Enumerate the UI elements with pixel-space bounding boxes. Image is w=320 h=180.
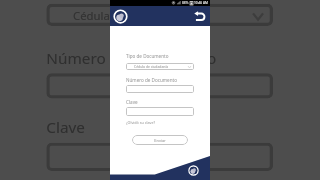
staticText: Cédula de ciudadanía — [73, 7, 190, 23]
staticText: 88% — [182, 1, 189, 5]
button[interactable]: ¿Olvidó su clave? — [126, 120, 156, 125]
button[interactable] — [46, 143, 273, 171]
staticText: Enviar — [154, 138, 166, 143]
staticText: Número de Documento — [126, 77, 177, 83]
staticText: 10:46 AM — [194, 1, 208, 5]
staticText: Número de Documento — [46, 48, 216, 67]
button[interactable]: Cédula de ciudadanía — [46, 4, 273, 26]
button[interactable]: Cédula de ciudadanía — [126, 63, 194, 70]
button[interactable]: Atrás — [194, 10, 206, 22]
button[interactable] — [126, 85, 194, 93]
button[interactable] — [46, 73, 273, 98]
button[interactable]: Enviar — [132, 135, 188, 145]
staticText: Tipo de Documento — [126, 53, 169, 59]
button[interactable] — [126, 107, 194, 116]
button[interactable]: Menú — [113, 9, 128, 24]
staticText: Cédula de ciudadanía — [134, 64, 169, 69]
staticText: Clave — [126, 99, 138, 105]
staticText: Clave — [46, 117, 86, 136]
staticText: ¿Olvidó su clave? — [126, 120, 156, 125]
